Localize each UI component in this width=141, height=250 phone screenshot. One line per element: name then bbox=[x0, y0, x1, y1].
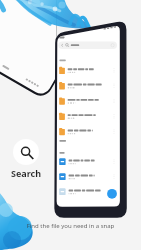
button[interactable]: Search bbox=[13, 139, 39, 165]
staticText: Search bbox=[0, 167, 52, 179]
staticText: Find the file you need in a snap bbox=[0, 222, 141, 230]
